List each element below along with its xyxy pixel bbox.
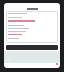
button[interactable] (6, 11, 58, 43)
button[interactable] (6, 45, 58, 50)
